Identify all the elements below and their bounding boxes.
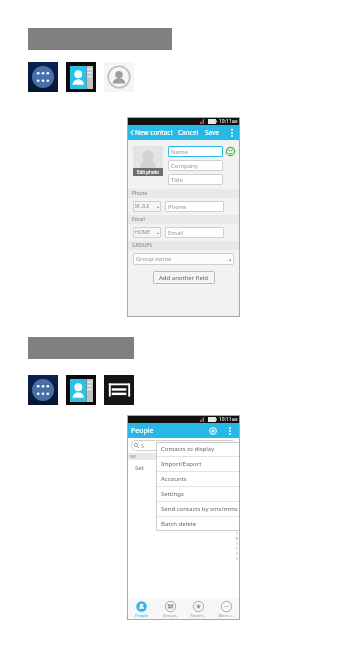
staticText: AM <box>232 119 238 124</box>
staticText: Email <box>132 216 145 223</box>
button[interactable]: Group name <box>133 253 234 265</box>
button[interactable]: More options <box>226 127 238 139</box>
button[interactable]: Add another field <box>153 271 215 284</box>
button[interactable]: New contact <box>130 128 173 137</box>
button[interactable]: Send contacts by sms/mms <box>156 502 240 516</box>
staticText: New contact <box>135 128 173 137</box>
staticText: 10:11 <box>219 416 232 423</box>
button[interactable]: HOME <box>133 227 161 238</box>
staticText: More c... <box>218 613 235 618</box>
staticText: People <box>135 613 148 618</box>
button[interactable]: People <box>127 598 156 620</box>
staticText: Name <box>171 148 188 156</box>
button[interactable]: Contacts <box>66 62 96 92</box>
staticText: W <box>235 536 239 541</box>
staticText: Set <box>135 464 144 472</box>
button[interactable]: Cancel <box>178 128 199 137</box>
staticText: Favorit... <box>190 613 207 618</box>
staticText: Phone <box>168 203 187 211</box>
staticText: Add another field <box>159 274 209 282</box>
staticText: AM <box>232 417 238 422</box>
button[interactable]: Contacts to display <box>156 442 240 456</box>
staticText: Phone <box>132 190 148 197</box>
button[interactable]: Edit photo <box>133 168 163 176</box>
staticText: M..ILE <box>135 203 150 210</box>
staticText: Edit photo <box>137 169 159 175</box>
staticText: Contacts to display <box>161 445 215 453</box>
staticText: S <box>236 516 238 521</box>
button[interactable]: Accounts <box>156 472 240 486</box>
staticText: # <box>236 556 239 561</box>
button[interactable]: More c... <box>212 598 240 620</box>
button[interactable]: All apps <box>28 375 58 405</box>
staticText: 10:11 <box>219 118 232 125</box>
staticText: V <box>236 531 239 536</box>
button[interactable]: Settings <box>156 487 240 501</box>
staticText: Email <box>168 229 184 237</box>
button[interactable]: Menu <box>104 375 134 405</box>
button[interactable]: Email <box>165 227 224 238</box>
button[interactable]: Name <box>168 146 223 157</box>
staticText: Import/Export <box>161 460 202 468</box>
staticText: Send contacts by sms/mms <box>161 505 238 513</box>
button[interactable]: S <box>131 440 236 451</box>
button[interactable]: Import/Export <box>156 457 240 471</box>
button[interactable]: Contacts <box>66 375 96 405</box>
staticText: Batch delete <box>161 520 197 528</box>
staticText: Z <box>236 551 239 556</box>
button[interactable]: Favorit... <box>184 598 212 620</box>
button[interactable]: Company <box>168 160 223 171</box>
staticText: HOME <box>135 229 150 236</box>
button[interactable]: Save <box>205 128 220 137</box>
staticText: Group name <box>136 255 172 263</box>
button[interactable]: Add contact <box>207 425 219 437</box>
staticText: Accounts <box>161 475 187 483</box>
staticText: People <box>131 426 154 436</box>
staticText: Title <box>171 176 183 184</box>
button[interactable]: All apps <box>28 62 58 92</box>
staticText: S <box>141 442 145 449</box>
staticText: X <box>236 541 239 546</box>
button[interactable]: Title <box>168 174 223 185</box>
button[interactable]: Phone <box>165 201 224 212</box>
staticText: Company <box>171 162 198 170</box>
button[interactable]: Contact photo <box>104 62 134 92</box>
staticText: Settings <box>161 490 184 498</box>
staticText: ME <box>130 454 136 459</box>
button[interactable]: M..ILE <box>133 201 161 212</box>
button[interactable]: More options <box>224 425 236 437</box>
staticText: Groups <box>163 613 177 618</box>
staticText: U <box>236 526 239 531</box>
staticText: Y <box>236 546 238 551</box>
staticText: GROUPS <box>132 242 153 249</box>
button[interactable]: Groups <box>156 598 184 620</box>
button[interactable]: Batch delete <box>156 517 240 531</box>
